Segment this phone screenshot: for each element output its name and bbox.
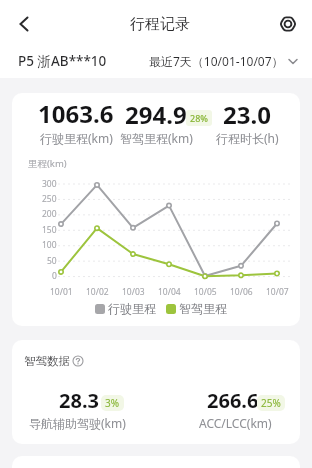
staticText: 250	[42, 193, 57, 205]
staticText: 0	[52, 270, 57, 282]
staticText: 最近7天（10/01-10/07）	[149, 53, 284, 69]
staticText: 200	[42, 208, 57, 220]
button[interactable]	[12, 12, 36, 36]
button[interactable]: 最近7天（10/01-10/07）	[149, 53, 298, 69]
staticText: ACC/LCC(km)	[199, 415, 272, 431]
staticText: 1063.6	[38, 97, 114, 130]
staticText: 行驶里程(km)	[40, 130, 113, 146]
staticText: 10/07	[266, 286, 289, 298]
staticText: 导航辅助驾驶(km)	[29, 415, 126, 431]
button[interactable]: 智驾数据	[24, 354, 84, 368]
staticText: 智驾里程(km)	[120, 130, 193, 146]
staticText: 10/02	[86, 286, 109, 298]
staticText: P5 浙AB***10	[18, 52, 107, 70]
staticText: 3%	[105, 396, 120, 410]
staticText: 10/05	[194, 286, 217, 298]
staticText: 28%	[190, 112, 208, 124]
staticText: 里程(km)	[28, 157, 67, 170]
staticText: 28.3	[59, 387, 99, 414]
staticText: 23.0	[223, 98, 271, 131]
staticText: 100	[42, 239, 57, 251]
button[interactable]: P5 浙AB***10	[18, 52, 107, 70]
staticText: 25%	[261, 396, 281, 410]
staticText: 50	[47, 255, 57, 267]
staticText: 150	[42, 224, 57, 236]
staticText: 行程记录	[130, 15, 190, 34]
staticText: 300	[42, 178, 57, 190]
staticText: 10/04	[158, 286, 181, 298]
staticText: 智驾里程	[179, 301, 227, 316]
staticText: 10/06	[230, 286, 253, 298]
staticText: 智驾数据	[24, 354, 70, 368]
staticText: 10/03	[122, 286, 145, 298]
staticText: 266.6	[207, 387, 259, 414]
staticText: 行程时长(h)	[216, 130, 279, 146]
staticText: 行驶里程	[108, 301, 156, 316]
staticText: 294.9	[125, 98, 187, 131]
staticText: 10/01	[50, 286, 73, 298]
button[interactable]	[278, 14, 298, 34]
